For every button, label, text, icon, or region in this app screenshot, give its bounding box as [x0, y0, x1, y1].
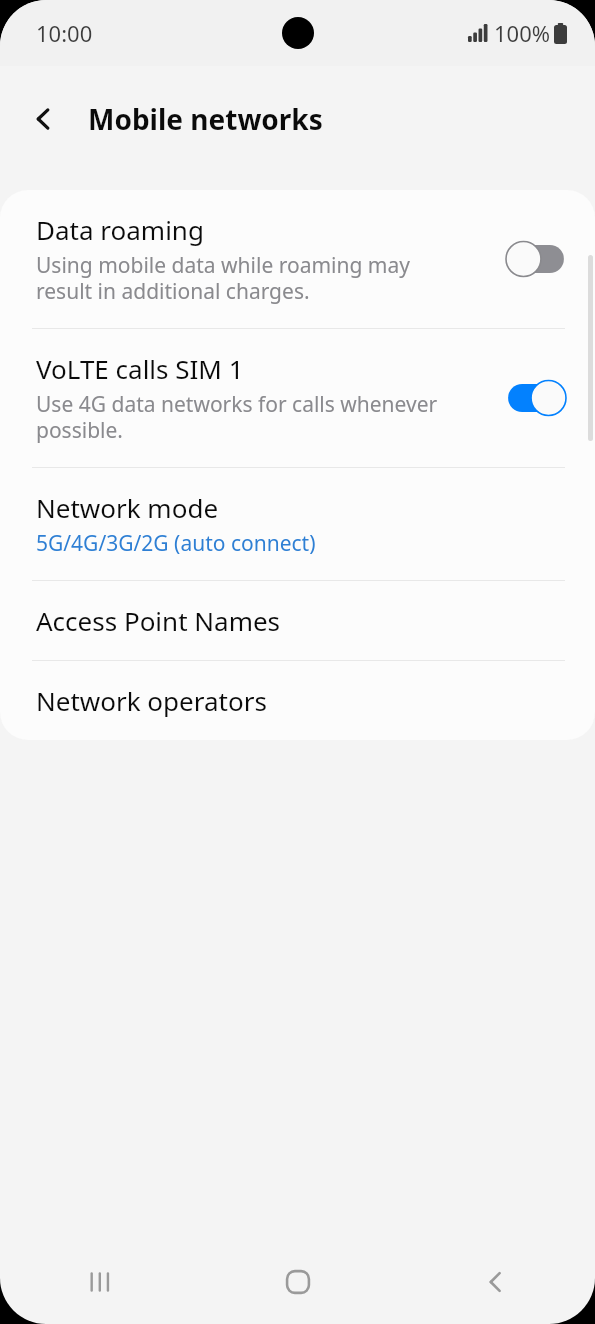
- button[interactable]: Home: [199, 1240, 397, 1324]
- button[interactable]: Data roaming: [0, 190, 595, 328]
- button[interactable]: Toggle off: [505, 240, 567, 278]
- staticText: Using mobile data while roaming may resu…: [36, 251, 410, 306]
- button[interactable]: Network mode: [0, 468, 595, 580]
- staticText: Access Point Names: [36, 603, 281, 638]
- staticText: VoLTE calls SIM 1: [36, 351, 244, 386]
- button[interactable]: Network operators: [0, 661, 595, 740]
- button[interactable]: Recent apps: [0, 1240, 199, 1324]
- staticText: 10:00: [36, 18, 93, 48]
- button[interactable]: Back: [397, 1240, 595, 1324]
- staticText: Data roaming: [36, 212, 204, 247]
- staticText: Network mode: [36, 490, 219, 525]
- staticText: 100%: [494, 18, 551, 48]
- staticText: Mobile networks: [88, 100, 323, 138]
- staticText: 5G/4G/3G/2G (auto connect): [36, 529, 316, 558]
- staticText: Use 4G data networks for calls whenever …: [36, 390, 438, 445]
- button[interactable]: Back: [20, 95, 68, 143]
- button[interactable]: VoLTE calls SIM 1: [0, 329, 595, 467]
- button[interactable]: Toggle on: [505, 379, 567, 417]
- button[interactable]: Access Point Names: [0, 581, 595, 660]
- staticText: Network operators: [36, 683, 267, 718]
